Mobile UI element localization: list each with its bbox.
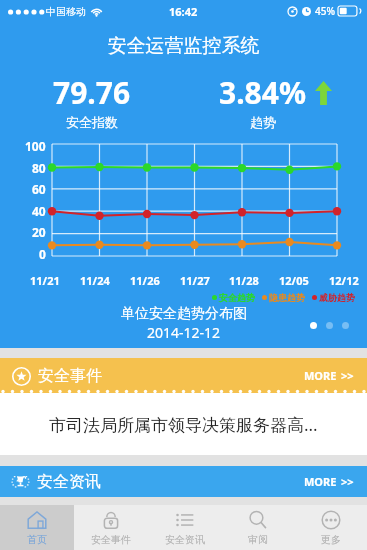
staticText: 60 — [32, 181, 46, 197]
staticText: 安全资讯 — [165, 533, 205, 546]
button[interactable]: 安全资讯 — [0, 466, 367, 497]
staticText: 趋势 — [250, 114, 276, 130]
button[interactable]: 安全事件 — [74, 505, 148, 550]
staticText: MORE — [304, 474, 337, 489]
button[interactable]: 安全资讯 — [148, 505, 221, 550]
staticText: 11/24 — [80, 273, 110, 288]
staticText: 2014-12-12 — [147, 323, 221, 342]
staticText: 安全资讯 — [37, 472, 101, 492]
staticText: MORE — [304, 368, 337, 383]
staticText: 隐患趋势 — [269, 292, 305, 303]
staticText: >> — [341, 368, 354, 383]
button[interactable]: 市司法局所属市领导决策服务器高... — [0, 393, 367, 455]
staticText: 安全事件 — [91, 533, 131, 546]
staticText: 40 — [32, 203, 46, 219]
button[interactable]: 更多 — [294, 505, 367, 550]
staticText: 0 — [39, 246, 46, 262]
staticText: 安全事件 — [38, 366, 102, 386]
staticText: 20 — [32, 224, 46, 240]
staticText: 79.76 — [53, 72, 131, 113]
staticText: 12/05 — [279, 273, 309, 288]
staticText: >> — [341, 474, 354, 489]
staticText: 单位安全趋势分布图 — [121, 305, 247, 323]
staticText: 11/27 — [180, 273, 210, 288]
staticText: 安全趋势 — [219, 292, 255, 303]
staticText: 11/21 — [30, 273, 60, 288]
staticText: 12/12 — [329, 273, 359, 288]
staticText: 安全运营监控系统 — [0, 34, 367, 58]
staticText: 11/28 — [229, 273, 259, 288]
staticText: 中国移动 — [46, 5, 86, 18]
staticText: 市司法局所属市领导决策服务器高... — [49, 413, 318, 436]
button[interactable]: 首页 — [0, 505, 74, 550]
staticText: 100 — [25, 138, 46, 154]
staticText: 审阅 — [248, 533, 268, 546]
button[interactable]: 安全事件 — [0, 358, 367, 393]
staticText: 首页 — [27, 533, 47, 546]
staticText: 3.84% — [219, 72, 306, 113]
staticText: 安全指数 — [66, 114, 118, 130]
staticText: 16:42 — [169, 4, 198, 19]
staticText: 11/26 — [130, 273, 160, 288]
staticText: 威胁趋势 — [319, 292, 355, 303]
staticText: 80 — [32, 160, 46, 176]
button[interactable]: 审阅 — [221, 505, 294, 550]
staticText: 更多 — [321, 533, 341, 546]
staticText: 45% — [315, 4, 335, 18]
